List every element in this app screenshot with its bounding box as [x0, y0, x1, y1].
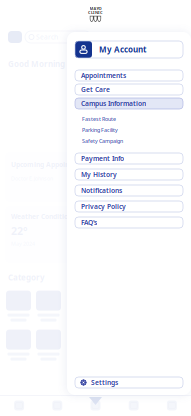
button[interactable]: FAQ's	[75, 217, 183, 228]
staticText: Notifications	[81, 186, 122, 195]
staticText: Weather Conditio	[11, 212, 68, 221]
button[interactable]: My Account	[75, 41, 183, 58]
button[interactable]: Fastest Route	[82, 114, 182, 124]
button[interactable]: My History	[75, 169, 183, 180]
staticText: Safety Campaign	[82, 137, 123, 145]
staticText: Category	[8, 272, 45, 283]
staticText: Settings	[91, 378, 118, 387]
staticText: Appointments	[81, 71, 126, 80]
staticText: My History	[81, 170, 117, 179]
staticText: Search	[36, 33, 58, 41]
button[interactable]: Payment Info	[75, 153, 183, 164]
button[interactable]: Tab 3	[76, 395, 115, 416]
button[interactable]: Appointments	[75, 70, 183, 81]
button[interactable]: Tab 1	[0, 395, 38, 416]
staticText: Parking Facility	[82, 126, 118, 134]
button[interactable]: Tab 4	[115, 395, 153, 416]
button[interactable]: Privacy Policy	[75, 201, 183, 212]
button[interactable]: Notifications	[75, 185, 183, 196]
staticText: 22°	[11, 224, 28, 238]
button[interactable]: Settings	[75, 377, 183, 388]
staticText: Fastest Route	[82, 115, 116, 123]
staticText: CLINIC	[88, 10, 103, 15]
button[interactable]: Campus Information	[75, 98, 183, 109]
staticText: MAYO	[89, 6, 101, 11]
staticText: Payment Info	[81, 154, 124, 163]
staticText: My Account	[99, 44, 146, 55]
button[interactable]: Get Care	[75, 84, 183, 95]
staticText: Privacy Policy	[81, 202, 126, 211]
staticText: Campus Information	[81, 99, 146, 108]
staticText: Get Care	[81, 85, 110, 94]
button[interactable]: Safety Campaign	[82, 136, 182, 146]
button[interactable]: Tab 5	[153, 395, 191, 416]
staticText: FAQ's	[81, 218, 97, 227]
staticText: Good Morning	[8, 59, 65, 69]
button[interactable]: Parking Facility	[82, 125, 182, 135]
staticText: Upcoming Appoint	[11, 160, 72, 169]
button[interactable]: Tab 2	[38, 395, 76, 416]
